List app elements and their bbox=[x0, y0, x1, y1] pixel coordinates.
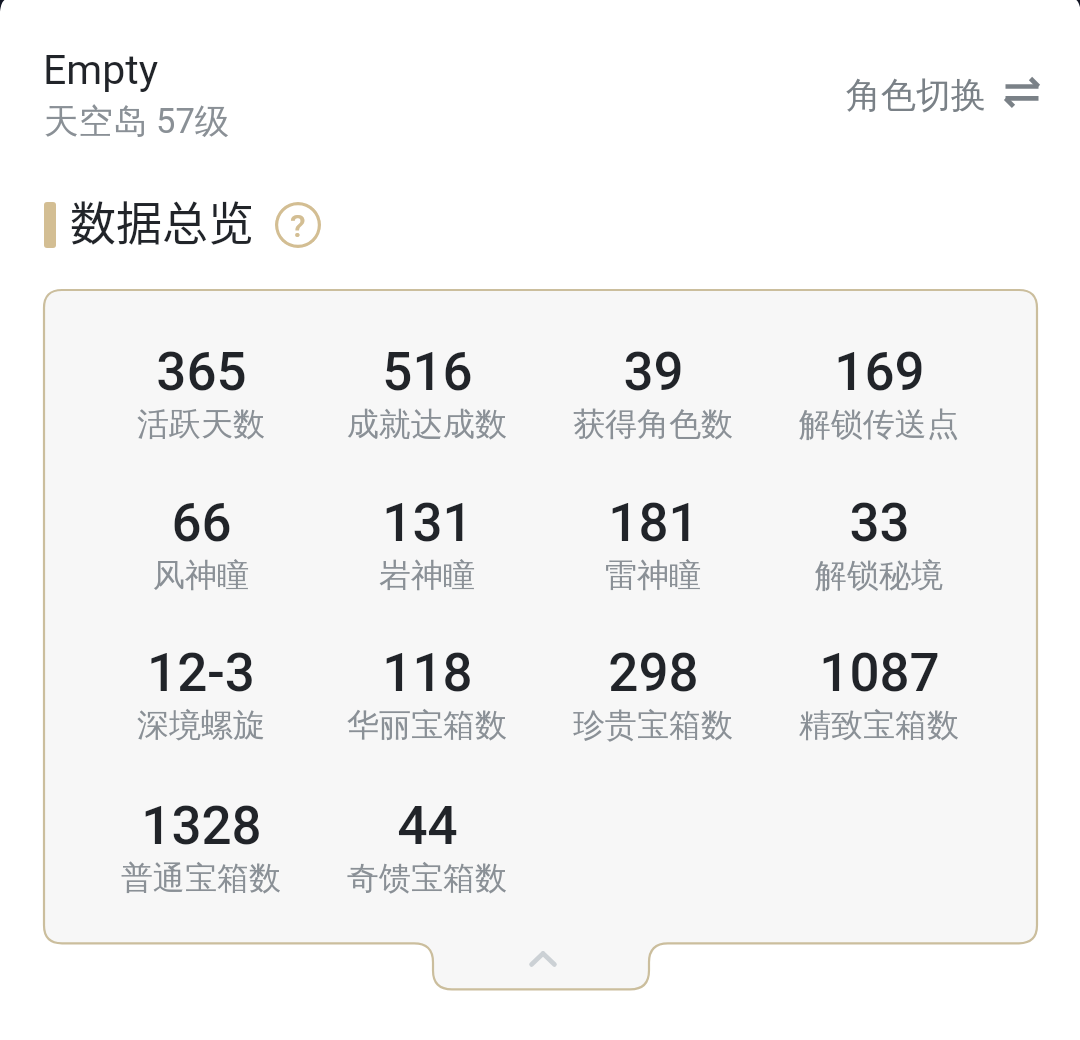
button[interactable]: 12-3 bbox=[88, 642, 314, 745]
staticText: 风神瞳 bbox=[153, 555, 249, 595]
staticText: 39 bbox=[623, 341, 684, 403]
button[interactable]: 39 bbox=[540, 341, 766, 444]
staticText: 华丽宝箱数 bbox=[347, 705, 507, 745]
staticText: 解锁传送点 bbox=[799, 404, 959, 444]
button[interactable]: 1087 bbox=[766, 642, 992, 745]
staticText: 奇馈宝箱数 bbox=[347, 858, 507, 898]
staticText: 169 bbox=[834, 341, 925, 403]
staticText: 获得角色数 bbox=[573, 404, 733, 444]
button[interactable]: 365 bbox=[88, 341, 314, 444]
button[interactable]: 1328 bbox=[88, 795, 314, 898]
staticText: 298 bbox=[608, 642, 699, 704]
staticText: 活跃天数 bbox=[137, 404, 265, 444]
staticText: Empty bbox=[43, 46, 159, 94]
staticText: 12-3 bbox=[147, 642, 255, 704]
button[interactable]: 298 bbox=[540, 642, 766, 745]
staticText: 1087 bbox=[819, 642, 940, 704]
button[interactable]: 66 bbox=[88, 492, 314, 595]
staticText: 131 bbox=[382, 492, 473, 554]
staticText: 516 bbox=[382, 341, 473, 403]
staticText: 岩神瞳 bbox=[379, 555, 475, 595]
staticText: 成就达成数 bbox=[347, 404, 507, 444]
button[interactable]: 169 bbox=[766, 341, 992, 444]
staticText: 普通宝箱数 bbox=[121, 858, 281, 898]
staticText: 天空岛 57级 bbox=[44, 100, 230, 143]
button[interactable]: 44 bbox=[314, 795, 540, 898]
button[interactable]: 33 bbox=[766, 492, 992, 595]
button[interactable]: 角色切换 bbox=[834, 65, 1046, 125]
staticText: 角色切换 bbox=[846, 73, 986, 117]
button[interactable]: 118 bbox=[314, 642, 540, 745]
button[interactable]: 131 bbox=[314, 492, 540, 595]
staticText: 珍贵宝箱数 bbox=[573, 705, 733, 745]
staticText: 数据总览 bbox=[70, 187, 254, 254]
staticText: 解锁秘境 bbox=[815, 555, 943, 595]
button[interactable]: 181 bbox=[540, 492, 766, 595]
staticText: 365 bbox=[156, 341, 247, 403]
button[interactable]: Collapse bbox=[433, 943, 649, 989]
staticText: 雷神瞳 bbox=[605, 555, 701, 595]
staticText: 深境螺旋 bbox=[137, 705, 265, 745]
staticText: 44 bbox=[397, 795, 458, 857]
staticText: 精致宝箱数 bbox=[799, 705, 959, 745]
staticText: 118 bbox=[382, 642, 473, 704]
button[interactable]: Help bbox=[275, 202, 321, 248]
staticText: 33 bbox=[849, 492, 910, 554]
staticText: 66 bbox=[171, 492, 232, 554]
staticText: 181 bbox=[608, 492, 699, 554]
staticText: 1328 bbox=[141, 795, 262, 857]
staticText: ? bbox=[290, 207, 306, 245]
button[interactable]: 516 bbox=[314, 341, 540, 444]
